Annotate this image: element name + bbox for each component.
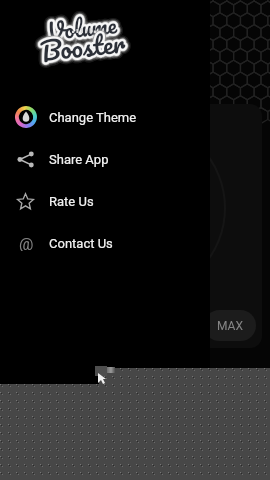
other: Share App [17,151,34,168]
other: Contact Us [18,235,34,251]
button[interactable]: Contact Us [0,222,210,264]
button[interactable]: Rate Us [0,180,210,222]
button[interactable]: MAX [204,310,256,341]
staticText: Booster [38,20,127,72]
staticText: Volume [45,4,119,50]
staticText: Share App [49,152,109,167]
staticText: Contact Us [49,236,113,251]
staticText: Booster [38,20,127,72]
staticText: Booster [38,20,127,72]
button[interactable]: Change Theme [0,96,210,138]
other: Rate Us [17,193,34,210]
staticText: Booster [38,20,127,72]
staticText: @ [19,235,34,251]
staticText: Volume [45,4,119,50]
other: Change Theme [15,106,37,128]
button[interactable]: Share App [0,138,210,180]
staticText: MAX [217,319,243,333]
staticText: Volume [45,4,119,50]
staticText: Volume [45,4,119,50]
staticText: Change Theme [49,110,137,125]
staticText: Volume [45,4,119,50]
staticText: Rate Us [49,194,94,209]
staticText: Booster [38,20,127,72]
